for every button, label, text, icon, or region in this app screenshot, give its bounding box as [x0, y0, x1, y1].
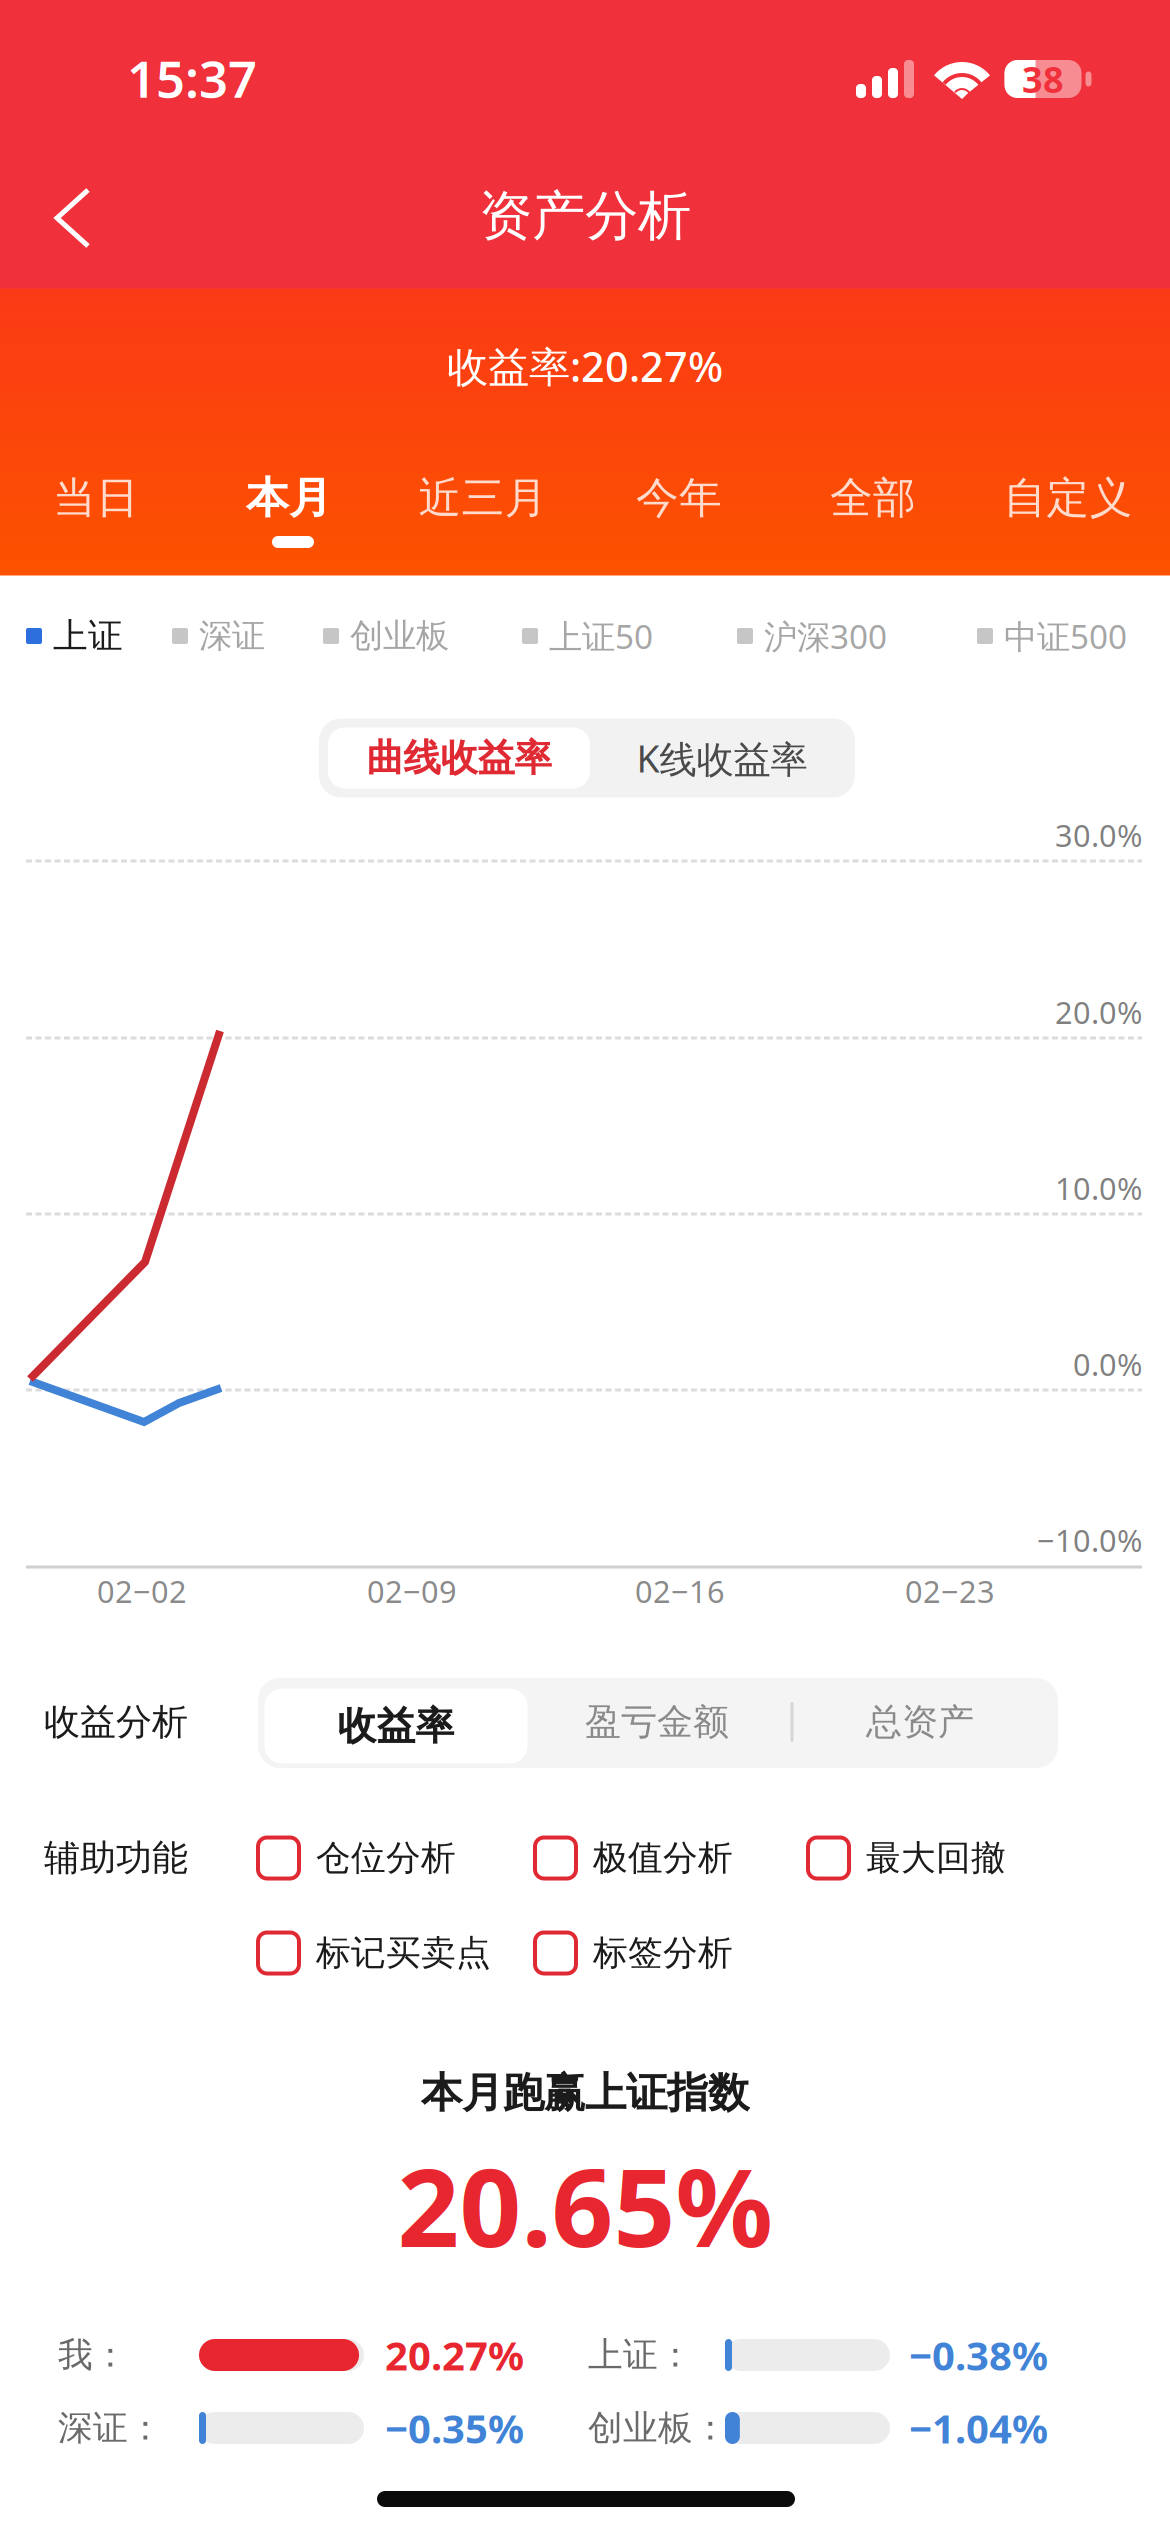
staticText: 总资产: [866, 1700, 974, 1744]
staticText: 30.0%: [1055, 815, 1142, 855]
staticText: 标记买卖点: [316, 1932, 491, 1974]
staticText: 曲线收益率: [366, 735, 551, 781]
button[interactable]: 标记买卖点: [258, 1916, 528, 1990]
staticText: 当日: [53, 472, 139, 524]
staticText: 资产分析: [479, 183, 691, 249]
button[interactable]: 创业板: [323, 601, 503, 671]
button[interactable]: 总资产: [789, 1683, 1051, 1761]
button[interactable]: 全部: [778, 447, 968, 549]
button[interactable]: 当日: [1, 447, 191, 549]
staticText: 02−09: [367, 1571, 457, 1611]
staticText: 近三月: [418, 472, 547, 524]
staticText: −0.35%: [385, 2401, 524, 2454]
staticText: 02−16: [635, 1571, 725, 1611]
button[interactable]: 最大回撤: [808, 1821, 1078, 1895]
button[interactable]: 仓位分析: [258, 1821, 528, 1895]
staticText: 收益率:20.27%: [447, 339, 723, 393]
button[interactable]: 盈亏金额: [526, 1683, 788, 1761]
button[interactable]: 本月: [194, 447, 384, 549]
staticText: 20.65%: [397, 2133, 772, 2277]
staticText: 收益分析: [44, 1700, 188, 1744]
button[interactable]: 收益率: [264, 1688, 527, 1763]
staticText: 今年: [636, 472, 722, 524]
staticText: 20.27%: [385, 2328, 524, 2381]
button[interactable]: 上证50: [522, 601, 702, 671]
button[interactable]: 沪深300: [737, 601, 917, 671]
button[interactable]: 近三月: [388, 447, 578, 549]
button[interactable]: 深证: [172, 601, 352, 671]
button[interactable]: 标签分析: [535, 1916, 805, 1990]
button[interactable]: K线收益率: [591, 727, 853, 788]
staticText: 自定义: [1003, 472, 1132, 524]
staticText: −0.38%: [909, 2328, 1048, 2381]
button[interactable]: 自定义: [973, 447, 1163, 549]
staticText: 中证500: [1004, 614, 1127, 658]
staticText: 沪深300: [764, 614, 887, 658]
staticText: 深证: [199, 615, 265, 656]
staticText: 本月: [246, 472, 332, 524]
button[interactable]: 中证500: [977, 601, 1157, 671]
staticText: 创业板：: [588, 2407, 728, 2449]
staticText: 0.0%: [1073, 1344, 1142, 1384]
staticText: −1.04%: [909, 2401, 1048, 2454]
staticText: 上证: [53, 615, 123, 657]
staticText: 最大回撤: [866, 1837, 1006, 1879]
button[interactable]: 上证: [26, 601, 206, 671]
button[interactable]: 今年: [584, 447, 774, 549]
staticText: 辅助功能: [44, 1836, 188, 1880]
staticText: 盈亏金额: [585, 1700, 729, 1744]
staticText: 创业板: [350, 615, 449, 656]
staticText: 上证50: [549, 614, 653, 658]
staticText: −10.0%: [1037, 1520, 1142, 1560]
staticText: 02−02: [97, 1571, 187, 1611]
staticText: 标签分析: [593, 1932, 733, 1974]
staticText: K线收益率: [636, 733, 807, 783]
staticText: 上证：: [588, 2334, 693, 2376]
staticText: 20.0%: [1055, 992, 1142, 1032]
staticText: 我：: [58, 2334, 128, 2376]
staticText: 02−23: [905, 1571, 995, 1611]
staticText: 38: [1022, 55, 1064, 103]
staticText: 收益率: [337, 1702, 454, 1750]
staticText: 全部: [830, 472, 916, 524]
staticText: 仓位分析: [316, 1837, 456, 1879]
staticText: 深证：: [58, 2407, 163, 2449]
button[interactable]: 极值分析: [535, 1821, 805, 1895]
staticText: 极值分析: [593, 1837, 733, 1879]
staticText: 15:37: [127, 44, 257, 112]
staticText: 10.0%: [1055, 1168, 1142, 1208]
button[interactable]: 曲线收益率: [328, 727, 590, 788]
staticText: 本月跑赢上证指数: [421, 2068, 749, 2118]
button[interactable]: 返回: [8, 153, 138, 283]
